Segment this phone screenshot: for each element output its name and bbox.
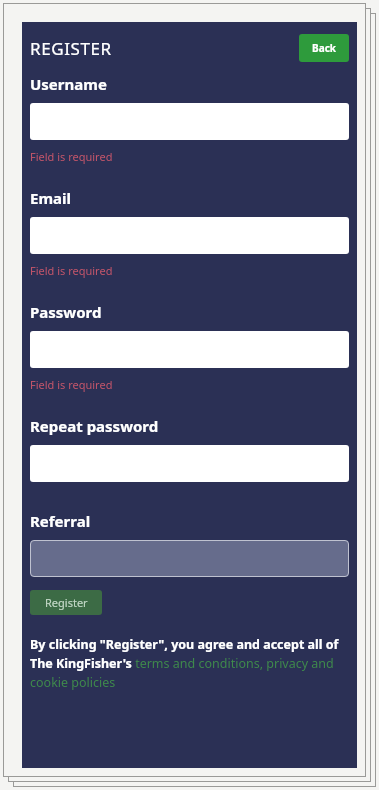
button[interactable] [30,103,349,140]
button[interactable]: Register [30,590,102,615]
staticText: Email [30,188,71,208]
staticText: Back [312,41,336,55]
button[interactable] [30,217,349,254]
staticText: Username [30,74,107,94]
button[interactable]: Back [299,34,349,62]
staticText: Repeat password [30,416,159,436]
staticText: Register [45,595,88,610]
staticText: Password [30,302,102,322]
button[interactable] [30,331,349,368]
staticText: REGISTER [30,37,112,60]
staticText: Field is required [30,149,113,164]
staticText: Field is required [30,263,113,278]
button[interactable]: By clicking "Register", you agree and ac… [30,636,349,690]
button[interactable] [30,445,349,482]
button[interactable] [30,540,349,577]
staticText: Referral [30,511,91,531]
staticText: Field is required [30,377,113,392]
